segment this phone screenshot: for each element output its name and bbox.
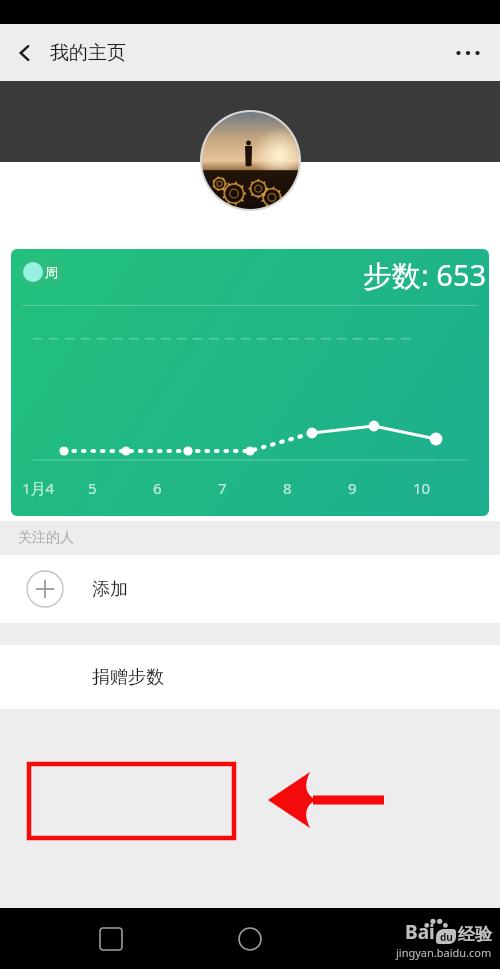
staticText: du [440,930,453,944]
staticText: 7 [218,478,227,498]
button[interactable]: Back [0,33,134,73]
staticText: 步数: 653 [363,255,487,295]
staticText: 8 [283,478,292,498]
button[interactable]: Profile photo [200,110,301,211]
button[interactable]: 周 [11,249,489,516]
staticText: 9 [348,478,357,498]
staticText: 周 [45,264,58,280]
other: Back [16,44,34,62]
staticText: 经验 [458,924,492,945]
staticText: 关注的人 [18,529,74,547]
button[interactable]: 周 [19,258,64,286]
staticText: Bai [405,919,435,945]
button[interactable]: 添加 [0,555,500,623]
staticText: 捐赠步数 [92,666,164,689]
button[interactable]: 捐赠步数 [0,645,500,709]
staticText: 6 [153,478,162,498]
button[interactable]: Home [238,927,262,951]
staticText: jingyan.baidu.com [396,945,492,960]
button[interactable]: More options [436,36,500,70]
staticText: 5 [88,478,97,498]
staticText: 10 [413,478,431,498]
staticText: 添加 [92,578,128,601]
staticText: 我的主页 [50,41,126,65]
button[interactable]: Recents [100,928,122,950]
staticText: 1月4 [22,478,55,498]
